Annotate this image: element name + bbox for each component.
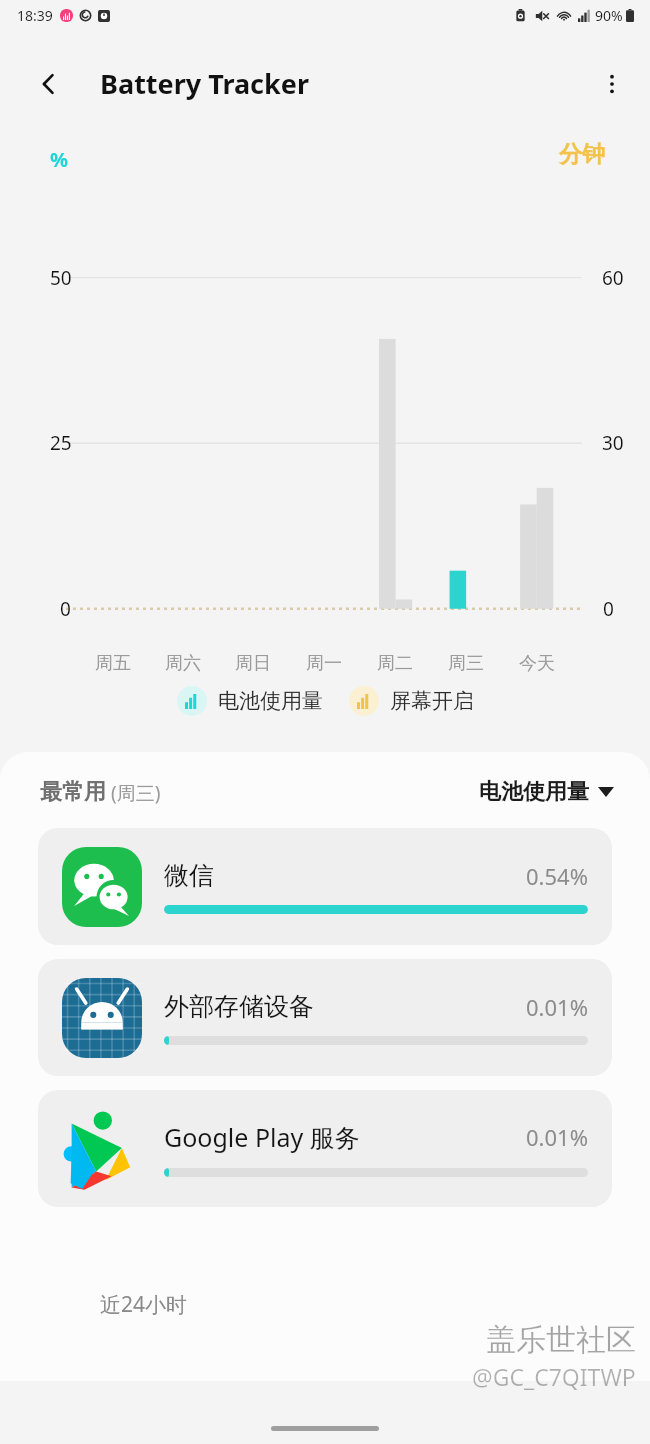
button[interactable]: 微信 [38,828,612,945]
button[interactable]: 屏幕开启 [349,686,474,716]
staticText: 25 [50,430,72,456]
staticText: 18:39 [17,6,53,25]
staticText: Battery Tracker [100,65,309,102]
staticText: 90% [595,6,623,25]
button[interactable]: 电池使用量 [177,686,323,716]
button[interactable]: More options [588,60,636,108]
staticText: 盖乐世社区 [486,1321,636,1359]
staticText: 电池使用量 [479,778,589,806]
staticText: 近24小时 [100,1290,188,1319]
staticText: 50 [50,265,72,291]
staticText: 外部存储设备 [164,991,314,1022]
button[interactable]: 电池使用量 [479,778,614,806]
staticText: 微信 [164,860,214,891]
staticText: 今天 [519,652,555,675]
staticText: 周五 [95,652,131,675]
staticText: % [50,146,69,173]
staticText: @GC_C7QITWP [472,1361,636,1392]
button[interactable]: Google Play 服务 [38,1090,612,1207]
staticText: 周一 [306,652,342,675]
staticText: 最常用 [40,778,106,806]
staticText: 周六 [165,652,201,675]
staticText: 周二 [377,652,413,675]
staticText: 30 [602,430,624,456]
staticText: 60 [602,265,624,291]
staticText: 0 [60,596,71,622]
button[interactable]: Back [26,61,72,107]
staticText: 0.54% [526,861,588,891]
staticText: 电池使用量 [218,688,323,714]
staticText: 0.01% [526,992,588,1022]
button[interactable]: 外部存储设备 [38,959,612,1076]
staticText: 0 [603,596,614,622]
staticText: (周三) [111,780,161,806]
staticText: 分钟 [559,140,605,169]
staticText: 周日 [235,652,271,675]
staticText: 屏幕开启 [390,688,474,714]
staticText: 0.01% [526,1122,588,1152]
staticText: 周三 [448,652,484,675]
staticText: Google Play 服务 [164,1120,360,1154]
